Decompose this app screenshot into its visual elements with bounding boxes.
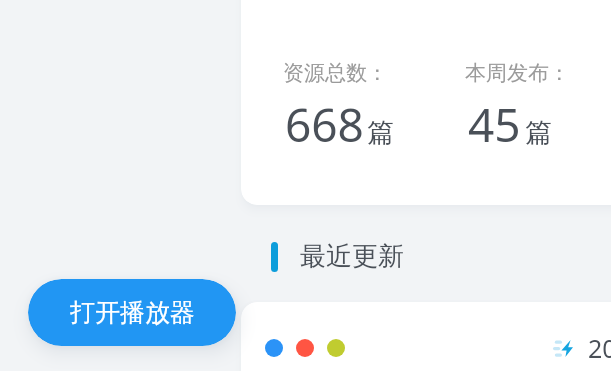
button[interactable]: 打开播放器	[28, 279, 236, 346]
button[interactable]: 资源总数：	[241, 0, 611, 205]
staticText: 最近更新	[300, 240, 404, 273]
other: Fast publish	[553, 340, 573, 357]
staticText: 篇	[525, 116, 552, 150]
staticText: 资源总数：	[283, 60, 388, 86]
button[interactable]: Fast publish	[241, 302, 611, 371]
button[interactable]: 最近更新	[271, 240, 404, 273]
staticText: 打开播放器	[70, 297, 195, 328]
staticText: 篇	[367, 116, 394, 150]
staticText: 45	[468, 93, 521, 156]
staticText: 本周发布：	[465, 60, 570, 86]
staticText: 668	[285, 93, 364, 156]
staticText: 2024-05-18	[588, 331, 611, 365]
